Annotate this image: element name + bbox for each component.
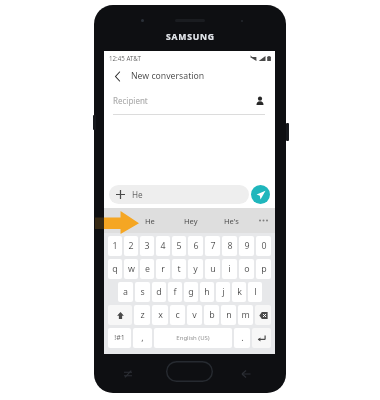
button[interactable]: c (170, 305, 185, 325)
staticText: x (158, 309, 163, 321)
button[interactable]: f (168, 282, 182, 302)
button[interactable]: e (140, 259, 154, 279)
staticText: u (210, 263, 216, 275)
staticText: . (241, 332, 244, 344)
button[interactable]: 7 (205, 236, 220, 256)
button[interactable]: Navigate up (104, 65, 131, 87)
staticText: 0 (261, 240, 267, 252)
staticText: 3 (144, 240, 150, 252)
button[interactable]: u (205, 259, 220, 279)
button[interactable]: Recent apps (123, 369, 133, 379)
staticText: SAMSUNG (166, 31, 215, 43)
button[interactable]: 9 (239, 236, 254, 256)
staticText: c (175, 309, 180, 321)
staticText: 9 (244, 240, 250, 252)
button[interactable]: x (152, 305, 168, 325)
staticText: 2 (128, 240, 134, 252)
staticText: 1 (112, 240, 118, 252)
button[interactable]: Hey (170, 208, 211, 233)
button[interactable]: Shift (108, 305, 132, 325)
button[interactable]: Backspace (255, 305, 271, 325)
button[interactable]: r (156, 259, 170, 279)
button[interactable]: y (188, 259, 203, 279)
staticText: y (193, 263, 198, 275)
button[interactable]: q (108, 259, 122, 279)
button[interactable]: 8 (222, 236, 237, 256)
button[interactable]: He (129, 208, 170, 233)
staticText: He (132, 189, 143, 200)
staticText: Recipient (113, 95, 148, 106)
staticText: 8 (227, 240, 233, 252)
button[interactable]: t (172, 259, 186, 279)
staticText: r (161, 263, 165, 275)
button[interactable]: i (222, 259, 237, 279)
staticText: He (145, 216, 155, 226)
button[interactable]: 2 (124, 236, 138, 256)
staticText: New conversation (131, 70, 205, 82)
staticText: f (173, 286, 177, 298)
button[interactable]: w (124, 259, 138, 279)
staticText: v (192, 309, 197, 321)
staticText: m (241, 309, 250, 321)
staticText: 5 (176, 240, 182, 252)
button[interactable]: a (118, 282, 133, 302)
staticText: a (123, 286, 128, 298)
button[interactable]: 5 (172, 236, 186, 256)
button[interactable]: More suggestions (252, 208, 275, 233)
button[interactable]: Home (166, 361, 213, 382)
staticText: h (204, 286, 210, 298)
staticText: i (228, 263, 231, 275)
staticText: w (128, 263, 135, 275)
button[interactable]: Enter (252, 328, 271, 348)
staticText: q (112, 263, 118, 275)
staticText: o (244, 263, 250, 275)
button[interactable]: k (232, 282, 246, 302)
staticText: 4 (160, 240, 166, 252)
staticText: p (261, 263, 267, 275)
staticText: t (177, 263, 181, 275)
button[interactable]: English (US) (154, 328, 232, 348)
button[interactable]: Choose contact (253, 94, 267, 108)
button[interactable]: h (200, 282, 214, 302)
button[interactable]: z (134, 305, 150, 325)
staticText: n (226, 309, 232, 321)
staticText: g (188, 286, 194, 298)
staticText: 7 (210, 240, 216, 252)
staticText: d (156, 286, 162, 298)
button[interactable]: Back (241, 369, 251, 379)
button[interactable]: 6 (188, 236, 203, 256)
staticText: !#1 (114, 333, 125, 343)
button[interactable]: !#1 (108, 328, 131, 348)
button[interactable]: He's (211, 208, 252, 233)
button[interactable]: 0 (256, 236, 271, 256)
staticText: s (140, 286, 145, 298)
button[interactable]: b (204, 305, 219, 325)
staticText: e (145, 263, 150, 275)
staticText: Hey (184, 216, 198, 226)
button[interactable]: l (248, 282, 262, 302)
button[interactable]: p (256, 259, 271, 279)
staticText: k (237, 286, 242, 298)
button[interactable]: v (187, 305, 202, 325)
button[interactable]: g (184, 282, 198, 302)
staticText: l (254, 286, 257, 298)
staticText: English (US) (176, 334, 210, 342)
staticText: 6 (193, 240, 199, 252)
button[interactable]: Send message (251, 185, 270, 204)
staticText: 12:45 AT&T (109, 54, 141, 62)
button[interactable]: o (239, 259, 254, 279)
staticText: z (140, 309, 145, 321)
button[interactable]: d (152, 282, 166, 302)
button[interactable]: 3 (140, 236, 154, 256)
button[interactable]: He (109, 185, 249, 204)
button[interactable]: n (221, 305, 236, 325)
button[interactable]: 4 (156, 236, 170, 256)
button[interactable]: 1 (108, 236, 122, 256)
button[interactable]: . (234, 328, 250, 348)
button[interactable]: , (133, 328, 152, 348)
button[interactable]: j (216, 282, 230, 302)
button[interactable]: s (135, 282, 150, 302)
button[interactable]: m (238, 305, 253, 325)
staticText: j (222, 286, 225, 298)
staticText: He's (224, 216, 239, 226)
